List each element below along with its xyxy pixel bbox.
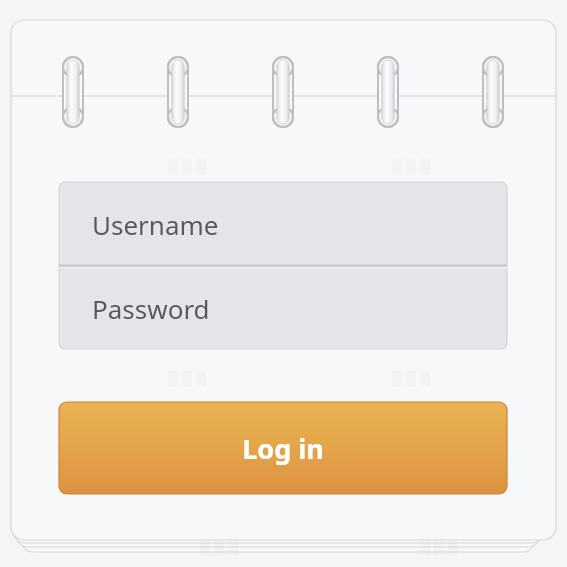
button[interactable]: Username	[59, 182, 507, 266]
staticText: Password	[92, 291, 210, 326]
staticText: Username	[92, 207, 219, 242]
button[interactable]: Password	[59, 267, 507, 349]
button[interactable]: Log in	[59, 402, 507, 494]
staticText: Log in	[242, 430, 324, 467]
